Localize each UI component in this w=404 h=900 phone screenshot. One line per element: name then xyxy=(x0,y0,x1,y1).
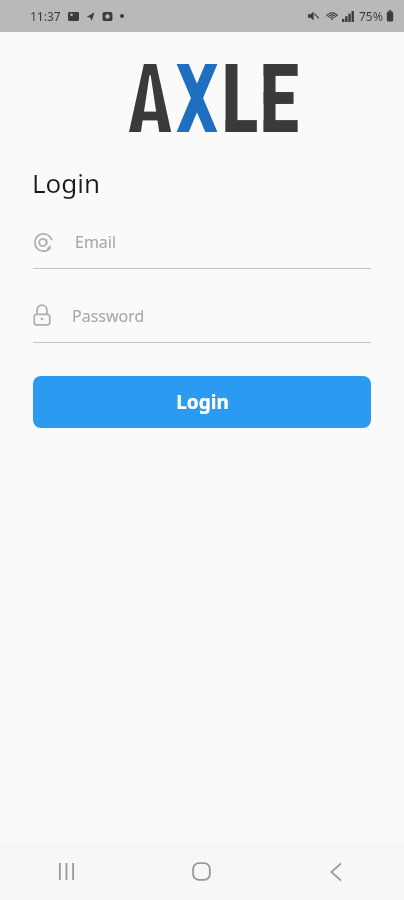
staticText: Email xyxy=(75,231,117,253)
staticText: Password xyxy=(72,305,145,327)
button[interactable]: Home xyxy=(134,843,269,900)
button[interactable]: Recent apps xyxy=(0,843,134,900)
button[interactable]: Back xyxy=(269,843,404,900)
button[interactable]: Login xyxy=(33,376,371,428)
button[interactable]: Password xyxy=(0,301,404,343)
staticText: 11:37 xyxy=(30,8,61,24)
staticText: Login xyxy=(32,165,101,200)
staticText: 75% xyxy=(359,8,383,24)
staticText: Login xyxy=(176,389,229,415)
button[interactable]: Email xyxy=(0,227,404,269)
